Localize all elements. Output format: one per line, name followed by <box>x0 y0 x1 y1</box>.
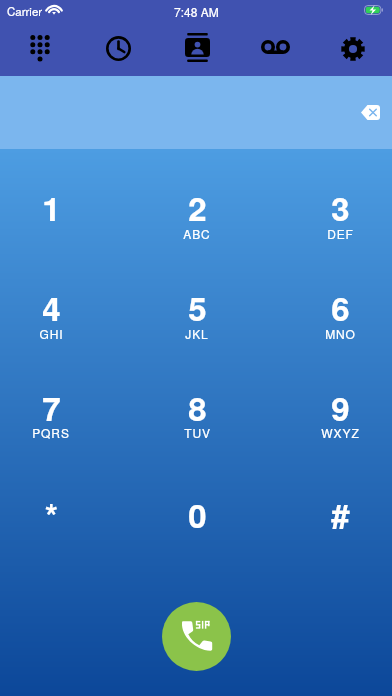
staticText: ABC <box>183 225 211 242</box>
staticText: GHI <box>39 325 64 342</box>
button[interactable]: Contacts <box>158 22 236 76</box>
button[interactable]: Settings <box>314 22 392 76</box>
button[interactable]: Key 0 <box>141 470 253 566</box>
button[interactable]: Phone number field <box>0 76 392 149</box>
staticText: # <box>331 491 350 538</box>
button[interactable]: Voicemail <box>236 22 314 76</box>
staticText: 5 <box>188 284 207 331</box>
staticText: 2 <box>188 184 207 231</box>
staticText: JKL <box>185 325 209 342</box>
button[interactable]: Key 8 <box>141 370 253 466</box>
button[interactable]: Key # <box>284 470 392 566</box>
button[interactable]: Key * <box>0 470 107 566</box>
button[interactable]: Key 1 <box>0 170 107 266</box>
staticText: * <box>45 491 58 538</box>
button[interactable]: Key 7 <box>0 370 107 466</box>
staticText: Carrier <box>7 3 43 19</box>
button[interactable]: Key 6 <box>284 270 392 366</box>
staticText: 9 <box>331 384 350 431</box>
staticText: 6 <box>331 284 350 331</box>
staticText: 8 <box>188 384 207 431</box>
staticText: MNO <box>325 325 356 342</box>
staticText: TUV <box>184 424 211 441</box>
button[interactable]: Keypad <box>0 22 79 76</box>
button[interactable]: Key 3 <box>284 170 392 266</box>
button[interactable]: Key 5 <box>141 270 253 366</box>
button[interactable]: Key 9 <box>284 370 392 466</box>
staticText: 0 <box>188 491 207 538</box>
button[interactable]: Key 2 <box>141 170 253 266</box>
staticText: DEF <box>327 225 354 242</box>
staticText: 1 <box>42 184 61 231</box>
button[interactable]: Backspace <box>352 96 389 129</box>
staticText: 7 <box>42 384 61 431</box>
staticText: WXYZ <box>321 424 360 441</box>
button[interactable]: Key 4 <box>0 270 107 366</box>
button[interactable]: Recents <box>79 22 158 76</box>
staticText: PQRS <box>32 424 70 441</box>
staticText: 7:48 AM <box>174 3 219 20</box>
button[interactable]: Call <box>162 602 231 671</box>
staticText: 3 <box>331 184 350 231</box>
staticText: 4 <box>42 284 61 331</box>
